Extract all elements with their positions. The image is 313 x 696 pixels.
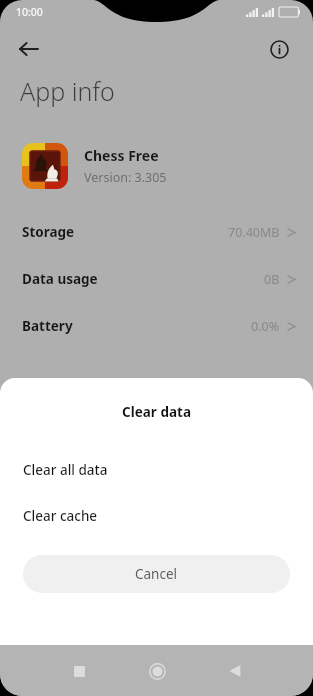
button[interactable]: Battery bbox=[0, 305, 313, 347]
button[interactable]: Back bbox=[211, 647, 259, 695]
staticText: 0.0% bbox=[251, 318, 280, 335]
staticText: Data usage bbox=[22, 270, 98, 288]
staticText: Battery bbox=[22, 317, 73, 335]
staticText: 0B bbox=[264, 271, 280, 288]
button[interactable]: Back bbox=[12, 32, 46, 66]
button[interactable]: Cancel bbox=[23, 555, 290, 593]
staticText: 10:00 bbox=[16, 5, 43, 19]
staticText: Cancel bbox=[135, 565, 178, 583]
staticText: Storage bbox=[22, 223, 75, 241]
staticText: App info bbox=[20, 74, 115, 108]
button[interactable]: Home bbox=[133, 647, 181, 695]
button[interactable]: Storage bbox=[0, 211, 313, 253]
staticText: Clear data bbox=[122, 403, 191, 421]
button[interactable]: Clear all data bbox=[0, 447, 313, 493]
staticText: Chess Free bbox=[84, 146, 159, 165]
staticText: 70.40MB bbox=[228, 224, 280, 241]
staticText: Clear cache bbox=[23, 507, 98, 525]
staticText: Version: 3.305 bbox=[84, 169, 167, 186]
button[interactable]: App details bbox=[262, 32, 296, 66]
staticText: Clear all data bbox=[23, 461, 108, 479]
button[interactable]: Clear cache bbox=[0, 493, 313, 539]
button[interactable]: Recent apps bbox=[55, 647, 103, 695]
button[interactable]: Data usage bbox=[0, 258, 313, 300]
